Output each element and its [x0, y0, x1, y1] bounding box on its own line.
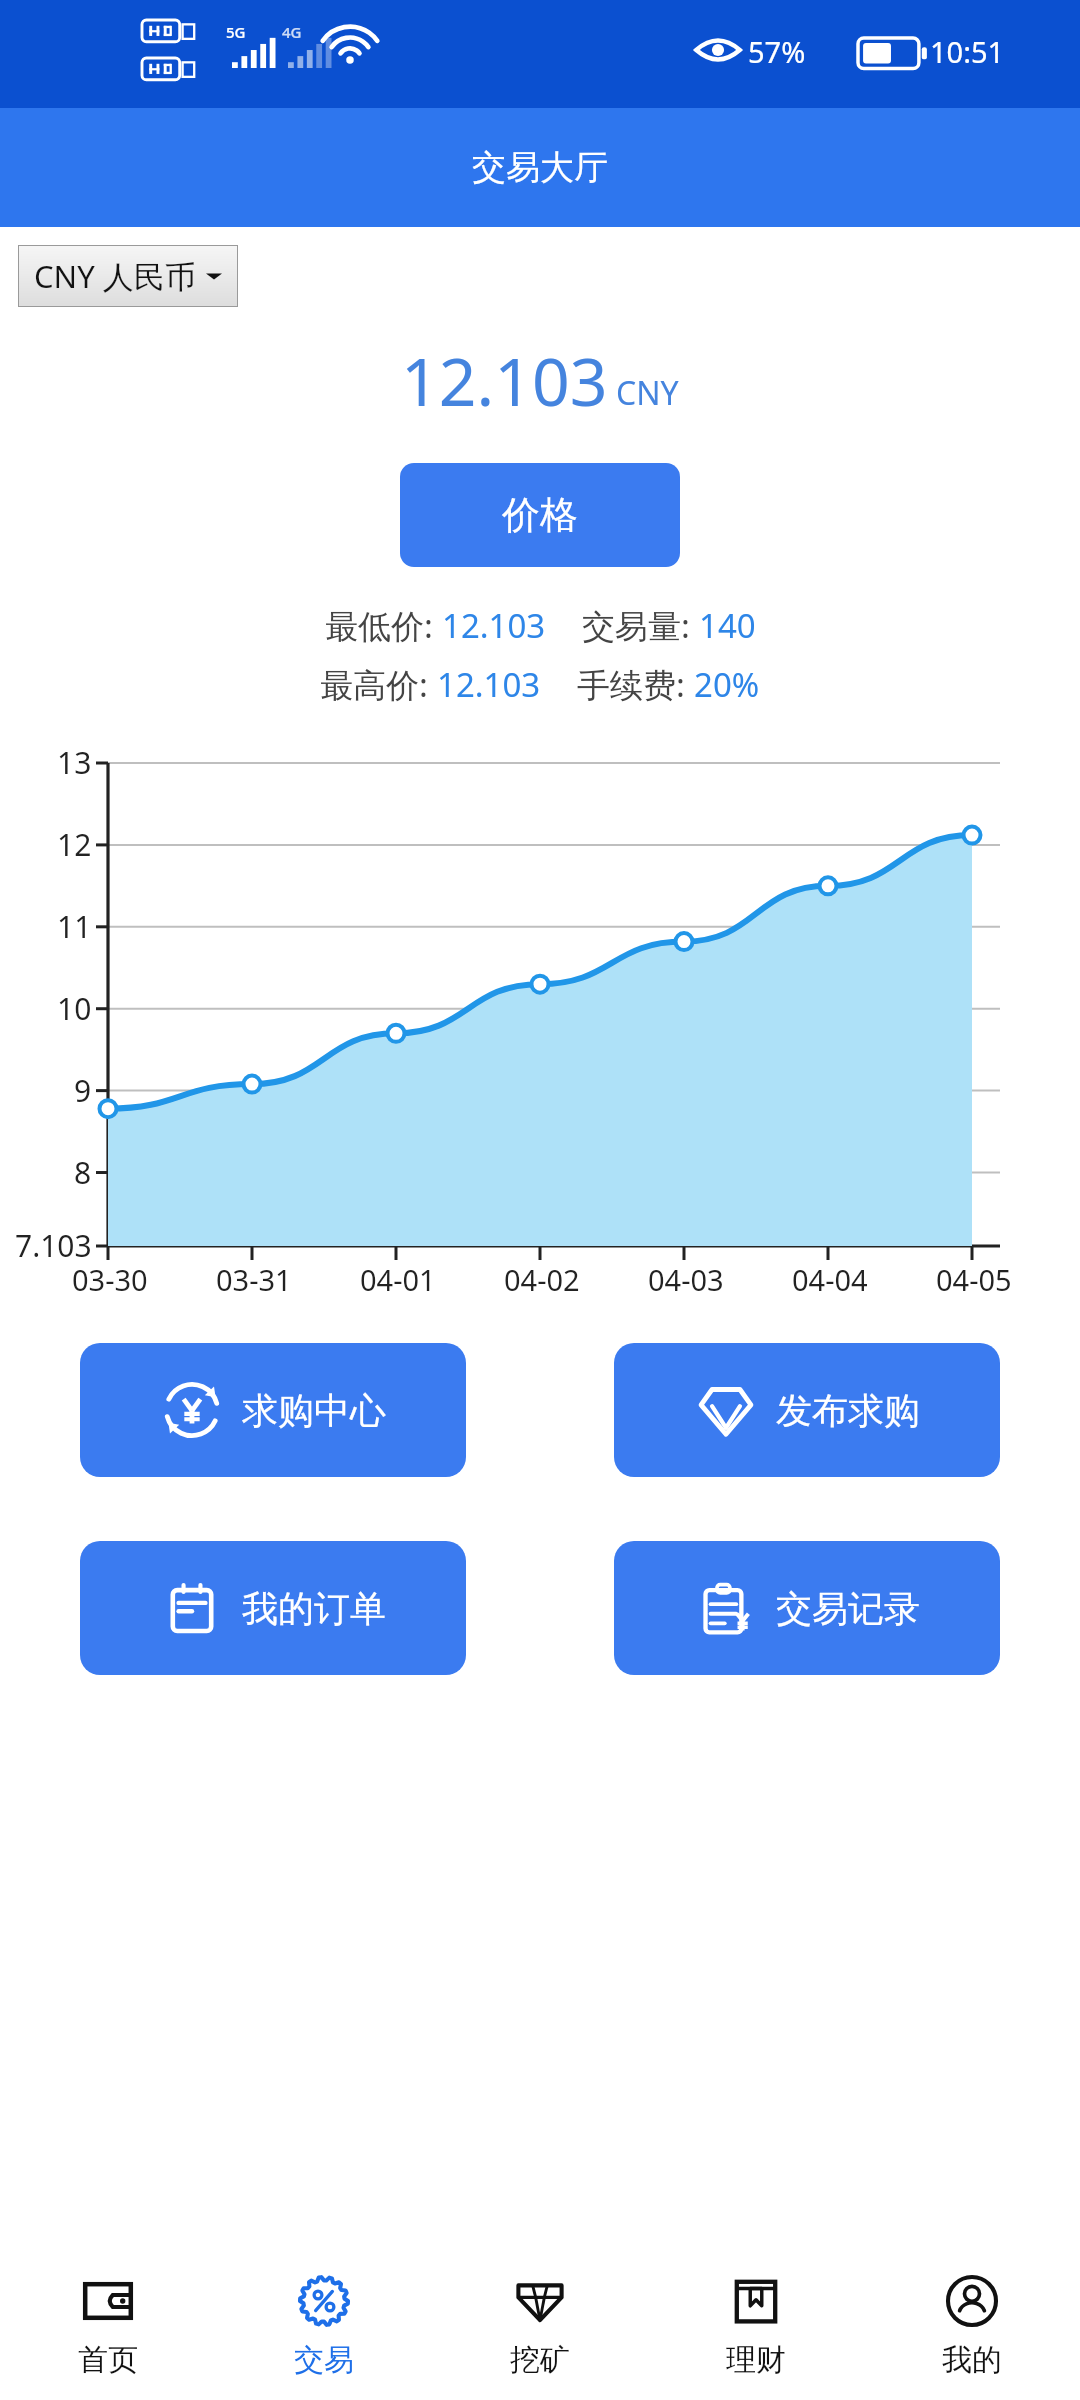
staticText: 04-04: [792, 1260, 868, 1299]
staticText: 140: [699, 603, 756, 648]
button[interactable]: CNY 人民币: [18, 245, 238, 307]
staticText: 12.103: [442, 603, 546, 648]
staticText: 03-30: [72, 1260, 148, 1299]
staticText: 交易量:: [582, 603, 699, 648]
staticText: 04-02: [504, 1260, 580, 1299]
staticText: 12.103: [437, 662, 541, 707]
button[interactable]: 交易: [216, 2263, 432, 2387]
staticText: 最高价:: [320, 662, 437, 707]
staticText: 7.103: [15, 1225, 92, 1266]
staticText: 10:51: [930, 32, 1005, 71]
staticText: 8: [74, 1152, 92, 1193]
staticText: 04-05: [936, 1260, 1012, 1299]
staticText: 4G: [282, 22, 302, 42]
button[interactable]: 理财: [648, 2263, 864, 2387]
staticText: 首页: [78, 2341, 138, 2379]
button[interactable]: 发布求购: [614, 1343, 1000, 1477]
staticText: 13: [57, 742, 92, 783]
staticText: 求购中心: [242, 1388, 386, 1433]
staticText: 12: [57, 824, 92, 865]
staticText: 12.103: [401, 335, 608, 425]
button[interactable]: 价格: [400, 463, 680, 567]
staticText: 04-01: [360, 1260, 436, 1299]
staticText: 11: [57, 906, 92, 947]
staticText: 发布求购: [776, 1388, 920, 1433]
button[interactable]: 求购中心: [80, 1343, 466, 1477]
staticText: 交易大厅: [472, 146, 608, 189]
staticText: 5G: [226, 22, 246, 42]
staticText: 挖矿: [510, 2341, 570, 2379]
staticText: 04-03: [648, 1260, 724, 1299]
staticText: 价格: [502, 491, 578, 539]
button[interactable]: 我的订单: [80, 1541, 466, 1675]
button[interactable]: 我的: [864, 2263, 1080, 2387]
staticText: CNY 人民币: [34, 255, 196, 297]
staticText: CNY: [616, 371, 679, 415]
button[interactable]: 挖矿: [432, 2263, 648, 2387]
button[interactable]: 首页: [0, 2263, 216, 2387]
staticText: 交易: [294, 2341, 354, 2379]
button[interactable]: 交易记录: [614, 1541, 1000, 1675]
staticText: 57%: [748, 32, 806, 71]
staticText: 03-31: [216, 1260, 292, 1299]
staticText: 手续费:: [577, 662, 694, 707]
staticText: 20%: [694, 662, 760, 707]
staticText: 我的: [942, 2341, 1002, 2379]
staticText: 10: [57, 988, 92, 1029]
staticText: 我的订单: [242, 1586, 386, 1631]
staticText: 交易记录: [776, 1586, 920, 1631]
staticText: 理财: [726, 2341, 786, 2379]
staticText: 9: [74, 1070, 92, 1111]
staticText: 最低价:: [325, 603, 442, 648]
